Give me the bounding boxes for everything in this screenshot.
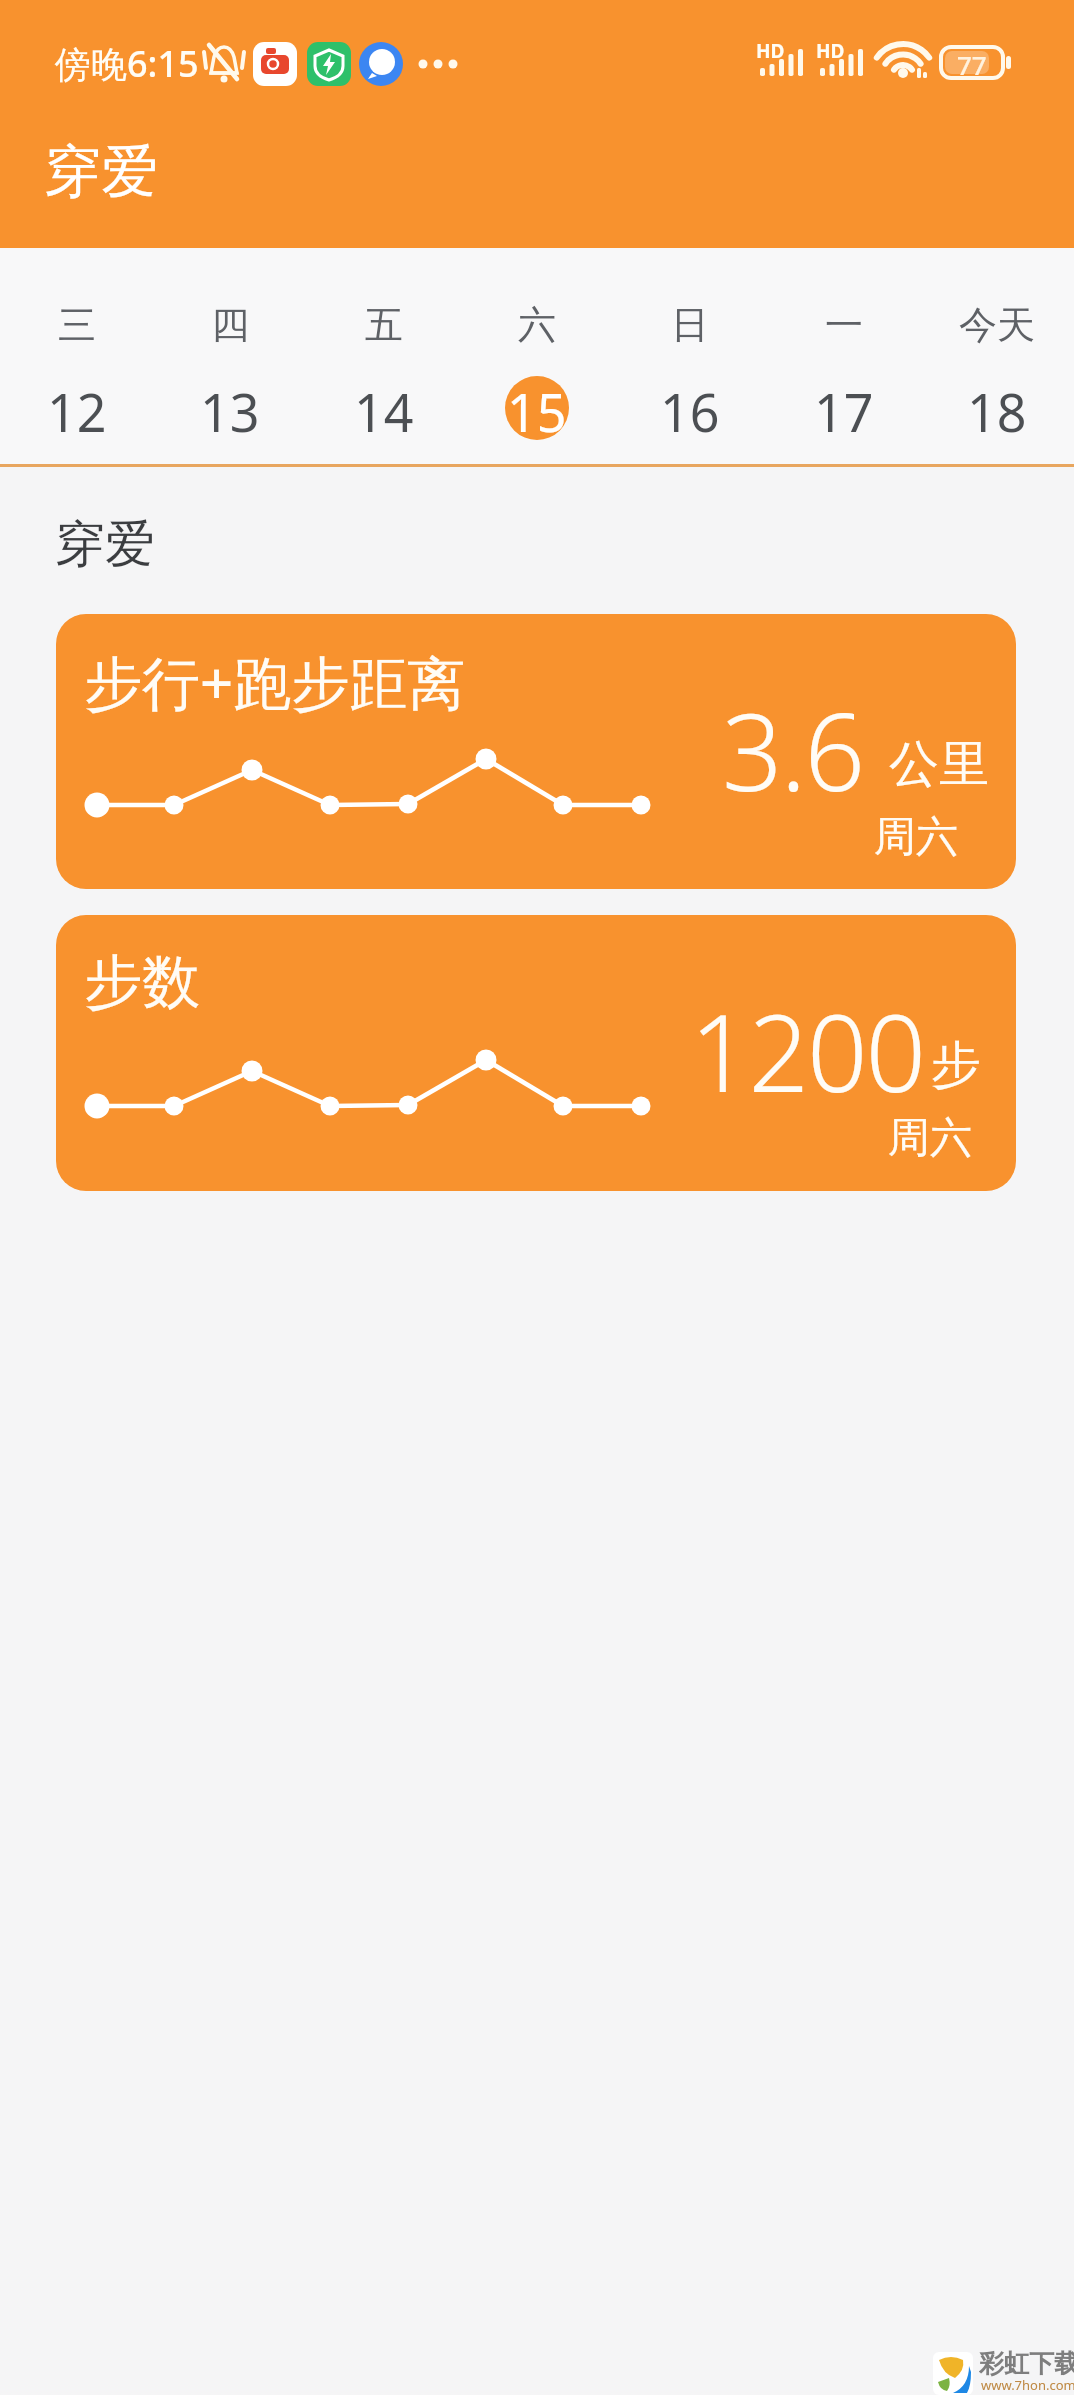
staticText: 77: [957, 47, 987, 77]
staticText: 16: [660, 376, 720, 440]
button[interactable]: [921, 248, 1074, 467]
staticText: 四: [211, 301, 249, 349]
staticText: 日: [671, 301, 709, 349]
staticText: 三: [58, 301, 96, 349]
staticText: 13: [200, 376, 260, 440]
button[interactable]: 步数: [56, 915, 1016, 1191]
staticText: 1200: [690, 979, 925, 1119]
staticText: HD: [816, 38, 845, 64]
staticText: 彩虹下载: [979, 2348, 1074, 2378]
staticText: 12: [47, 376, 107, 440]
button[interactable]: 步行+跑步距离: [56, 614, 1016, 889]
button[interactable]: [0, 248, 153, 467]
button[interactable]: [460, 248, 613, 467]
staticText: 六: [518, 301, 556, 349]
button[interactable]: [767, 248, 920, 467]
staticText: 周六: [888, 1112, 972, 1165]
staticText: 穿爱: [55, 513, 155, 576]
staticText: 公里: [889, 733, 989, 796]
staticText: 步数: [84, 946, 200, 1019]
button[interactable]: [307, 248, 460, 467]
staticText: 穿爱: [44, 136, 158, 208]
button[interactable]: [153, 248, 306, 467]
staticText: www.7hon.com: [981, 2376, 1074, 2394]
staticText: 一: [825, 301, 863, 349]
staticText: 步行+跑步距离: [84, 642, 466, 721]
staticText: 今天: [959, 301, 1035, 349]
staticText: 3.6: [722, 678, 863, 818]
staticText: 步: [931, 1034, 981, 1097]
staticText: 18: [967, 376, 1027, 440]
staticText: 14: [354, 376, 414, 440]
button[interactable]: [614, 248, 767, 467]
staticText: 傍晚6:15: [55, 39, 199, 88]
staticText: 17: [814, 376, 874, 440]
staticText: HD: [756, 38, 785, 64]
staticText: 五: [365, 301, 403, 349]
staticText: 周六: [874, 811, 958, 864]
staticText: 15: [507, 376, 567, 440]
